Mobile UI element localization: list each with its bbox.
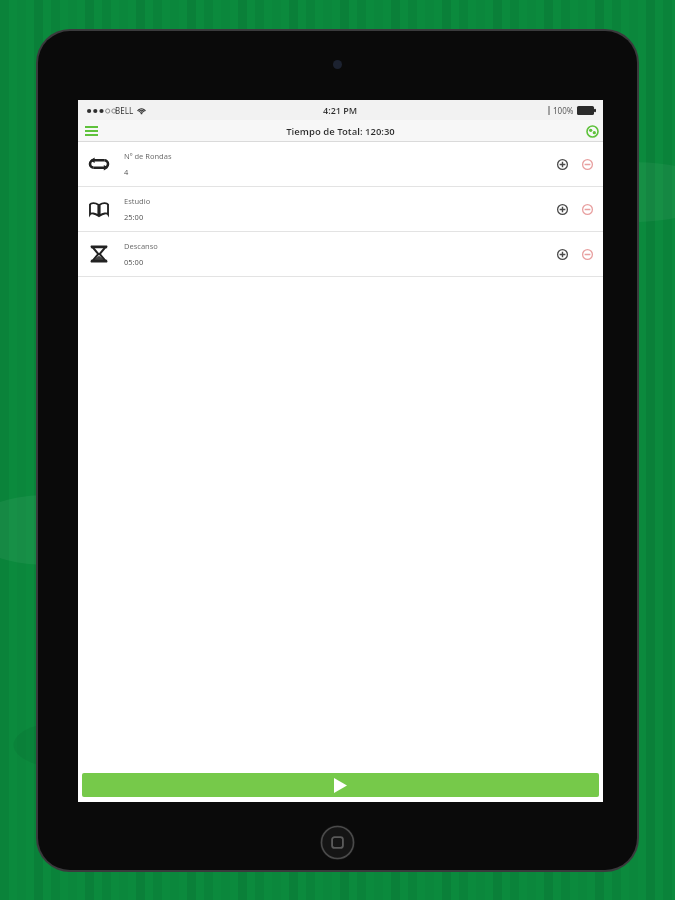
- staticText: 100%: [553, 105, 574, 116]
- staticText: Tiempo de Total: 120:30: [286, 125, 395, 138]
- button[interactable]: Increase Descanso: [550, 242, 574, 266]
- staticText: Nº de Rondas: [124, 151, 172, 161]
- staticText: Descanso: [124, 241, 158, 251]
- staticText: BELL: [115, 105, 134, 116]
- button[interactable]: Increase Estudio: [550, 197, 574, 221]
- button[interactable]: Decrease Estudio: [575, 197, 599, 221]
- staticText: 4: [124, 167, 129, 177]
- button[interactable]: Nº de Rondas: [78, 142, 603, 187]
- button[interactable]: Descanso: [78, 232, 603, 277]
- button[interactable]: Settings: [581, 120, 603, 142]
- staticText: 05:00: [124, 257, 144, 267]
- button[interactable]: Menu: [78, 120, 104, 142]
- staticText: 4:21 PM: [323, 104, 358, 116]
- button[interactable]: Start: [82, 773, 599, 797]
- button[interactable]: Decrease Descanso: [575, 242, 599, 266]
- button[interactable]: Increase Nº de Rondas: [550, 152, 574, 176]
- button[interactable]: Decrease Nº de Rondas: [575, 152, 599, 176]
- button[interactable]: Estudio: [78, 187, 603, 232]
- staticText: Estudio: [124, 196, 151, 206]
- staticText: 25:00: [124, 212, 144, 222]
